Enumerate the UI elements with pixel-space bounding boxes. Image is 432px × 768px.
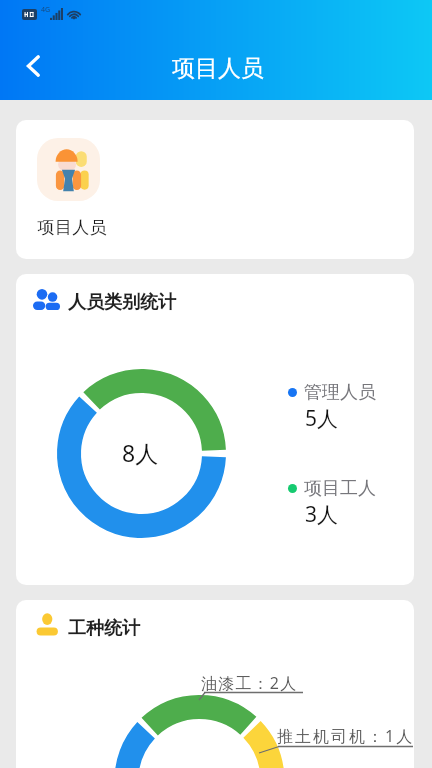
staticText: 推土机司机：1人	[277, 725, 414, 747]
staticText: 管理人员	[304, 381, 376, 404]
button[interactable]: 项目工人	[288, 477, 376, 529]
button[interactable]: 管理人员	[288, 381, 376, 433]
button[interactable]: 项目人员	[37, 138, 107, 238]
staticText: 8人	[122, 437, 159, 468]
staticText: 油漆工：2人	[201, 672, 298, 694]
button[interactable]: Back	[14, 48, 50, 84]
staticText: 项目人员	[37, 217, 107, 238]
staticText: 项目工人	[304, 477, 376, 500]
staticText: 工种统计	[68, 617, 140, 640]
staticText: 5人	[305, 404, 339, 433]
staticText: 3人	[305, 500, 339, 529]
staticText: 人员类别统计	[68, 291, 176, 314]
staticText: 4G	[41, 5, 51, 15]
staticText: 项目人员	[172, 54, 264, 83]
